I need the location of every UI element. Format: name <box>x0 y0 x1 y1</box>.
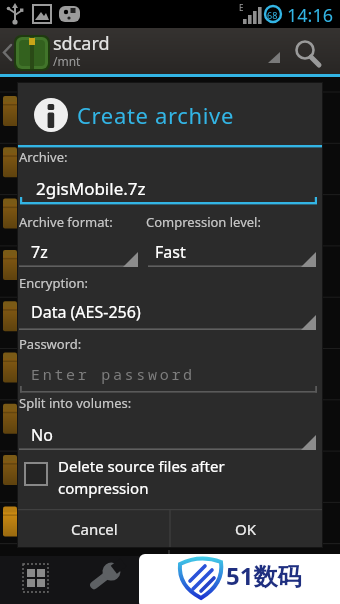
button[interactable] <box>0 28 120 74</box>
button[interactable] <box>80 556 138 604</box>
button[interactable] <box>19 238 138 268</box>
staticText: 14:16 <box>287 3 334 28</box>
button[interactable]: Cancel <box>18 510 170 547</box>
staticText: Archive: <box>19 148 68 166</box>
button[interactable] <box>19 420 316 451</box>
staticText: OK <box>235 519 257 539</box>
button[interactable] <box>148 238 316 268</box>
staticText: 51数码 <box>226 559 302 592</box>
staticText: compression <box>58 478 149 498</box>
button[interactable] <box>290 30 332 72</box>
button[interactable] <box>24 456 304 502</box>
button[interactable]: OK <box>170 510 322 547</box>
staticText: sdcard <box>53 31 110 56</box>
staticText: Compression level: <box>146 213 261 231</box>
button[interactable] <box>18 556 76 604</box>
button[interactable] <box>19 298 316 331</box>
button[interactable] <box>19 168 317 208</box>
staticText: 2gisMobile.7z <box>36 177 146 200</box>
staticText: Enter password <box>31 364 195 384</box>
staticText: E <box>239 2 244 13</box>
staticText: Encryption: <box>19 274 88 292</box>
staticText: Cancel <box>71 519 118 539</box>
staticText: /mnt <box>53 53 81 69</box>
staticText: Data (AES-256) <box>31 301 141 323</box>
button[interactable] <box>19 358 316 394</box>
staticText: Delete source files after <box>58 456 225 476</box>
staticText: Fast <box>155 241 186 263</box>
staticText: No <box>31 424 53 446</box>
staticText: 68 <box>267 9 278 21</box>
staticText: Password: <box>19 335 82 353</box>
staticText: Create archive <box>77 100 235 130</box>
staticText: 7z <box>31 241 48 263</box>
staticText: Split into volumes: <box>19 394 132 412</box>
staticText: Archive format: <box>19 213 113 231</box>
